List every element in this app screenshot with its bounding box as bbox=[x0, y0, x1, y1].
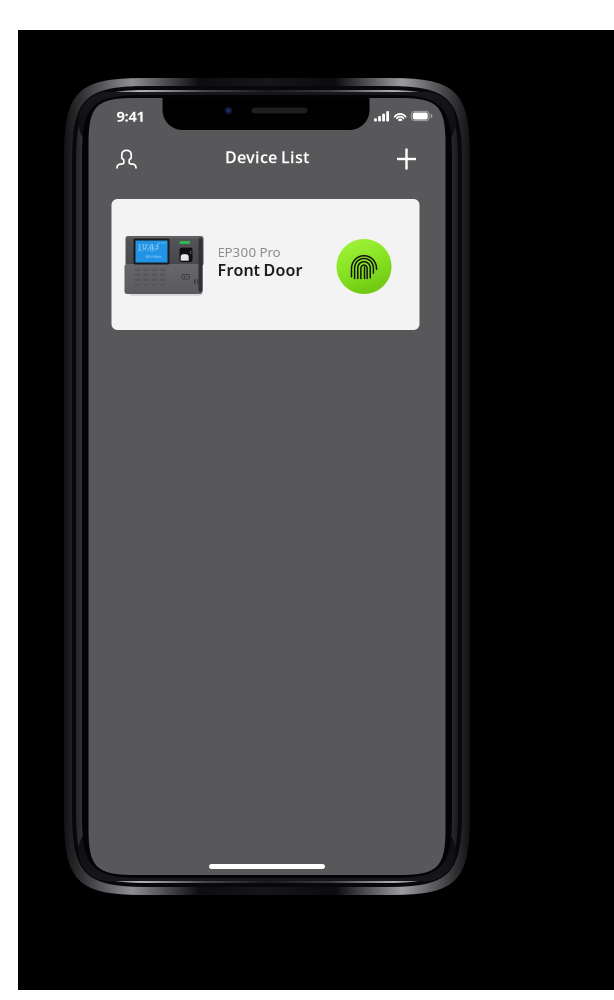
staticText: Attendance bbox=[146, 255, 162, 258]
button[interactable]: Unlock Front Door with fingerprint bbox=[336, 239, 391, 294]
staticText: Device List bbox=[225, 146, 309, 168]
staticText: EP300 bbox=[158, 241, 167, 245]
staticText: 9:41 bbox=[116, 106, 144, 126]
staticText: 10:43 bbox=[137, 241, 159, 252]
button[interactable]: Add device bbox=[385, 139, 427, 179]
button[interactable]: 10:43 bbox=[111, 199, 419, 330]
staticText: EP300 Pro bbox=[217, 243, 280, 261]
staticText: Mon 13 Apr bbox=[138, 248, 155, 252]
staticText: Front Door bbox=[217, 259, 302, 280]
button[interactable]: Profile bbox=[105, 139, 147, 179]
